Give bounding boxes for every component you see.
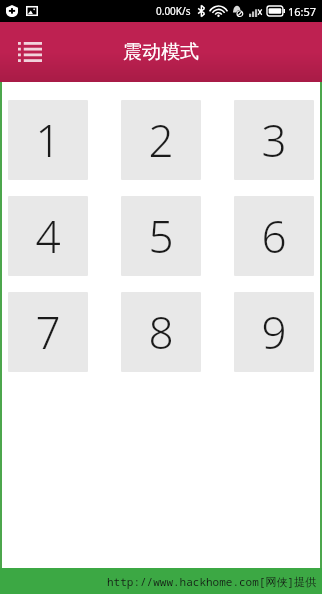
button[interactable]: 7 — [8, 292, 88, 372]
button[interactable]: 1 — [8, 100, 88, 180]
staticText: 震动模式 — [123, 40, 199, 64]
staticText: 8 — [148, 302, 174, 362]
staticText: http://www.hackhome.com[网侠]提供 — [107, 574, 316, 589]
staticText: 6 — [261, 206, 287, 266]
staticText: 9 — [261, 302, 287, 362]
button[interactable]: 8 — [121, 292, 201, 372]
button[interactable]: 4 — [8, 196, 88, 276]
button[interactable]: 2 — [121, 100, 201, 180]
staticText: 2 — [148, 110, 174, 170]
button[interactable]: 5 — [121, 196, 201, 276]
staticText: 7 — [35, 302, 61, 362]
button[interactable]: Menu — [8, 30, 52, 74]
staticText: 16:57 — [288, 4, 317, 19]
button[interactable]: 6 — [234, 196, 314, 276]
staticText: 4 — [35, 206, 61, 266]
staticText: 3 — [261, 110, 287, 170]
staticText: 0.00K/s — [156, 4, 191, 18]
staticText: 1 — [35, 110, 61, 170]
button[interactable]: 3 — [234, 100, 314, 180]
staticText: 5 — [148, 206, 174, 266]
button[interactable]: 9 — [234, 292, 314, 372]
